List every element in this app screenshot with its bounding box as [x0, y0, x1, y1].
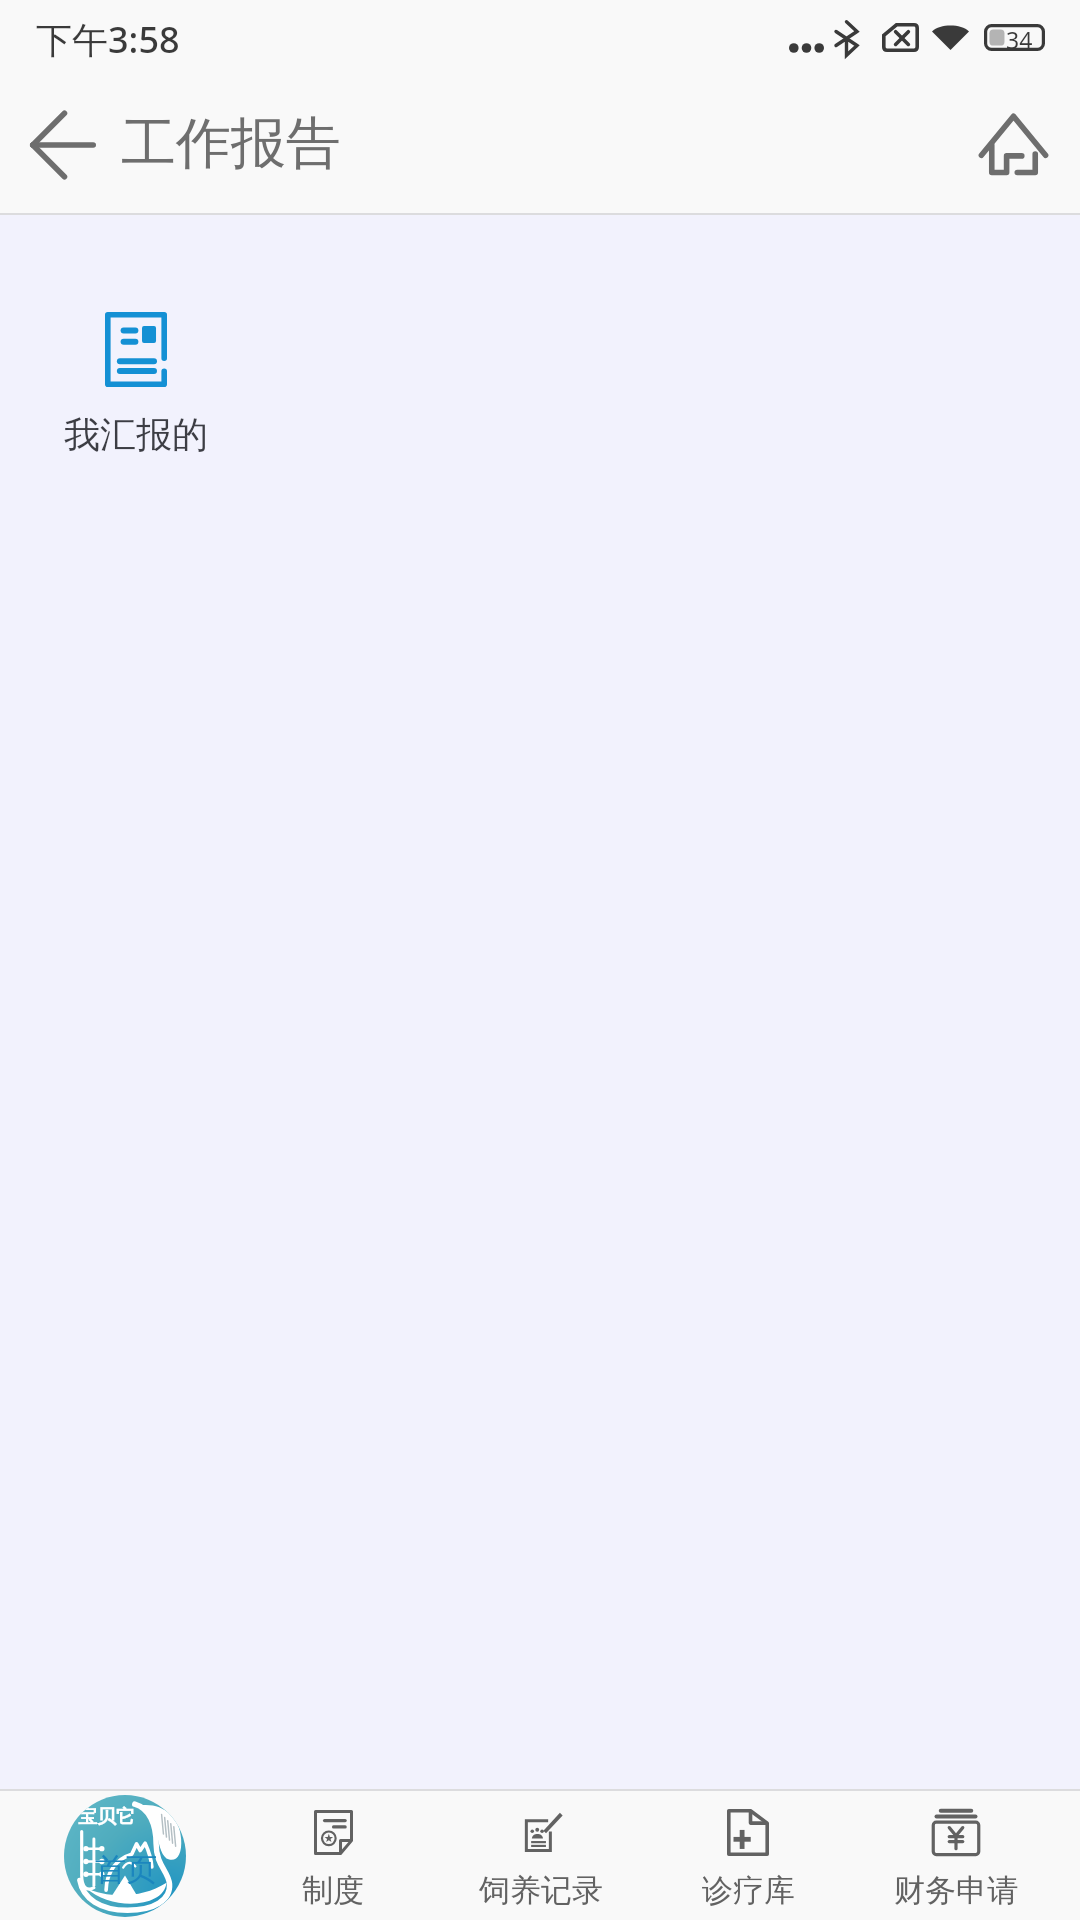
staticText: 我汇报的	[64, 412, 208, 457]
staticText: 34	[1006, 24, 1033, 51]
staticText: 首页	[95, 1850, 157, 1889]
button[interactable]: 我汇报的	[51, 312, 221, 457]
staticText: 饲养记录	[479, 1871, 603, 1910]
other: Back	[16, 105, 110, 185]
staticText: 制度	[302, 1871, 364, 1910]
staticText: 诊疗库	[702, 1871, 795, 1910]
button[interactable]: 饲养记录	[441, 1789, 641, 1920]
button[interactable]: 首页	[14, 1789, 236, 1920]
button[interactable]: 诊疗库	[648, 1789, 848, 1920]
button[interactable]: Home	[955, 105, 1072, 185]
staticText: 下午3:58	[36, 15, 180, 64]
staticText: 宝贝它	[78, 1805, 135, 1829]
button[interactable]: 制度	[233, 1789, 433, 1920]
button[interactable]: Back	[16, 105, 330, 185]
staticText: 财务申请	[894, 1871, 1018, 1910]
staticText: 工作报告	[121, 109, 341, 178]
button[interactable]: 财务申请	[856, 1789, 1056, 1920]
